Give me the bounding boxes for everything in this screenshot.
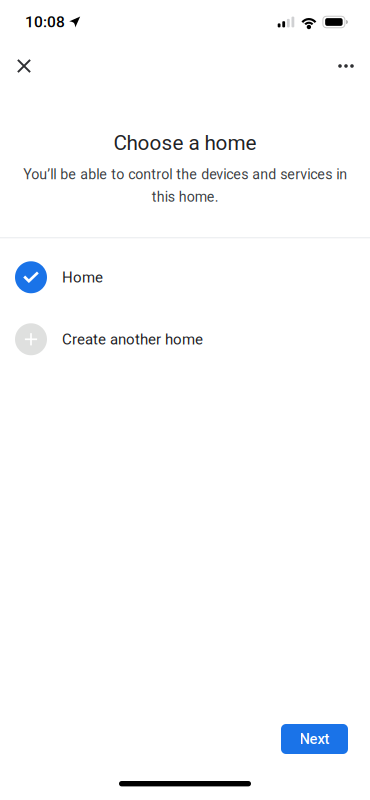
button[interactable]: Next: [281, 724, 348, 754]
staticText: You’ll be able to control the devices an…: [23, 166, 347, 205]
staticText: Next: [299, 730, 329, 748]
staticText: Home: [62, 268, 103, 286]
staticText: Create another home: [62, 330, 203, 348]
button[interactable]: Create another home: [0, 308, 370, 370]
staticText: 10:08: [25, 13, 65, 31]
button[interactable]: Home: [0, 246, 370, 308]
button[interactable]: More options: [324, 44, 368, 88]
staticText: Choose a home: [113, 131, 256, 155]
button[interactable]: Close: [2, 44, 46, 88]
